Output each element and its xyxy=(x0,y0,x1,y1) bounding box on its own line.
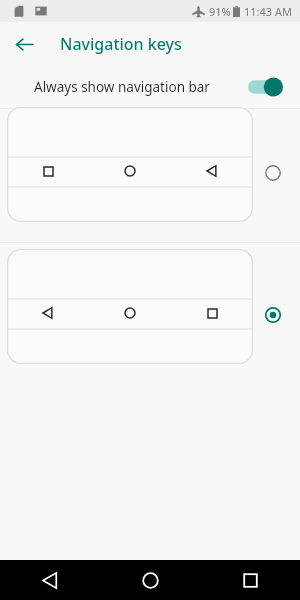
button[interactable]: Select layout xyxy=(0,127,300,242)
button[interactable]: Home xyxy=(100,560,200,600)
button[interactable]: Back xyxy=(6,26,42,62)
staticText: 91% xyxy=(209,4,231,19)
staticText: 11:43 AM xyxy=(244,4,292,19)
staticText: Navigation keys xyxy=(60,33,182,55)
button[interactable]: Recent apps xyxy=(200,560,300,600)
staticText: Always show navigation bar xyxy=(34,78,210,96)
button[interactable]: Selected layout xyxy=(0,269,300,384)
button[interactable]: Always show navigation bar xyxy=(0,66,300,108)
button[interactable]: Selected layout xyxy=(262,304,284,326)
button[interactable]: Back xyxy=(0,560,100,600)
button[interactable]: Always show navigation bar xyxy=(248,75,284,99)
button[interactable]: Select layout xyxy=(262,162,284,184)
